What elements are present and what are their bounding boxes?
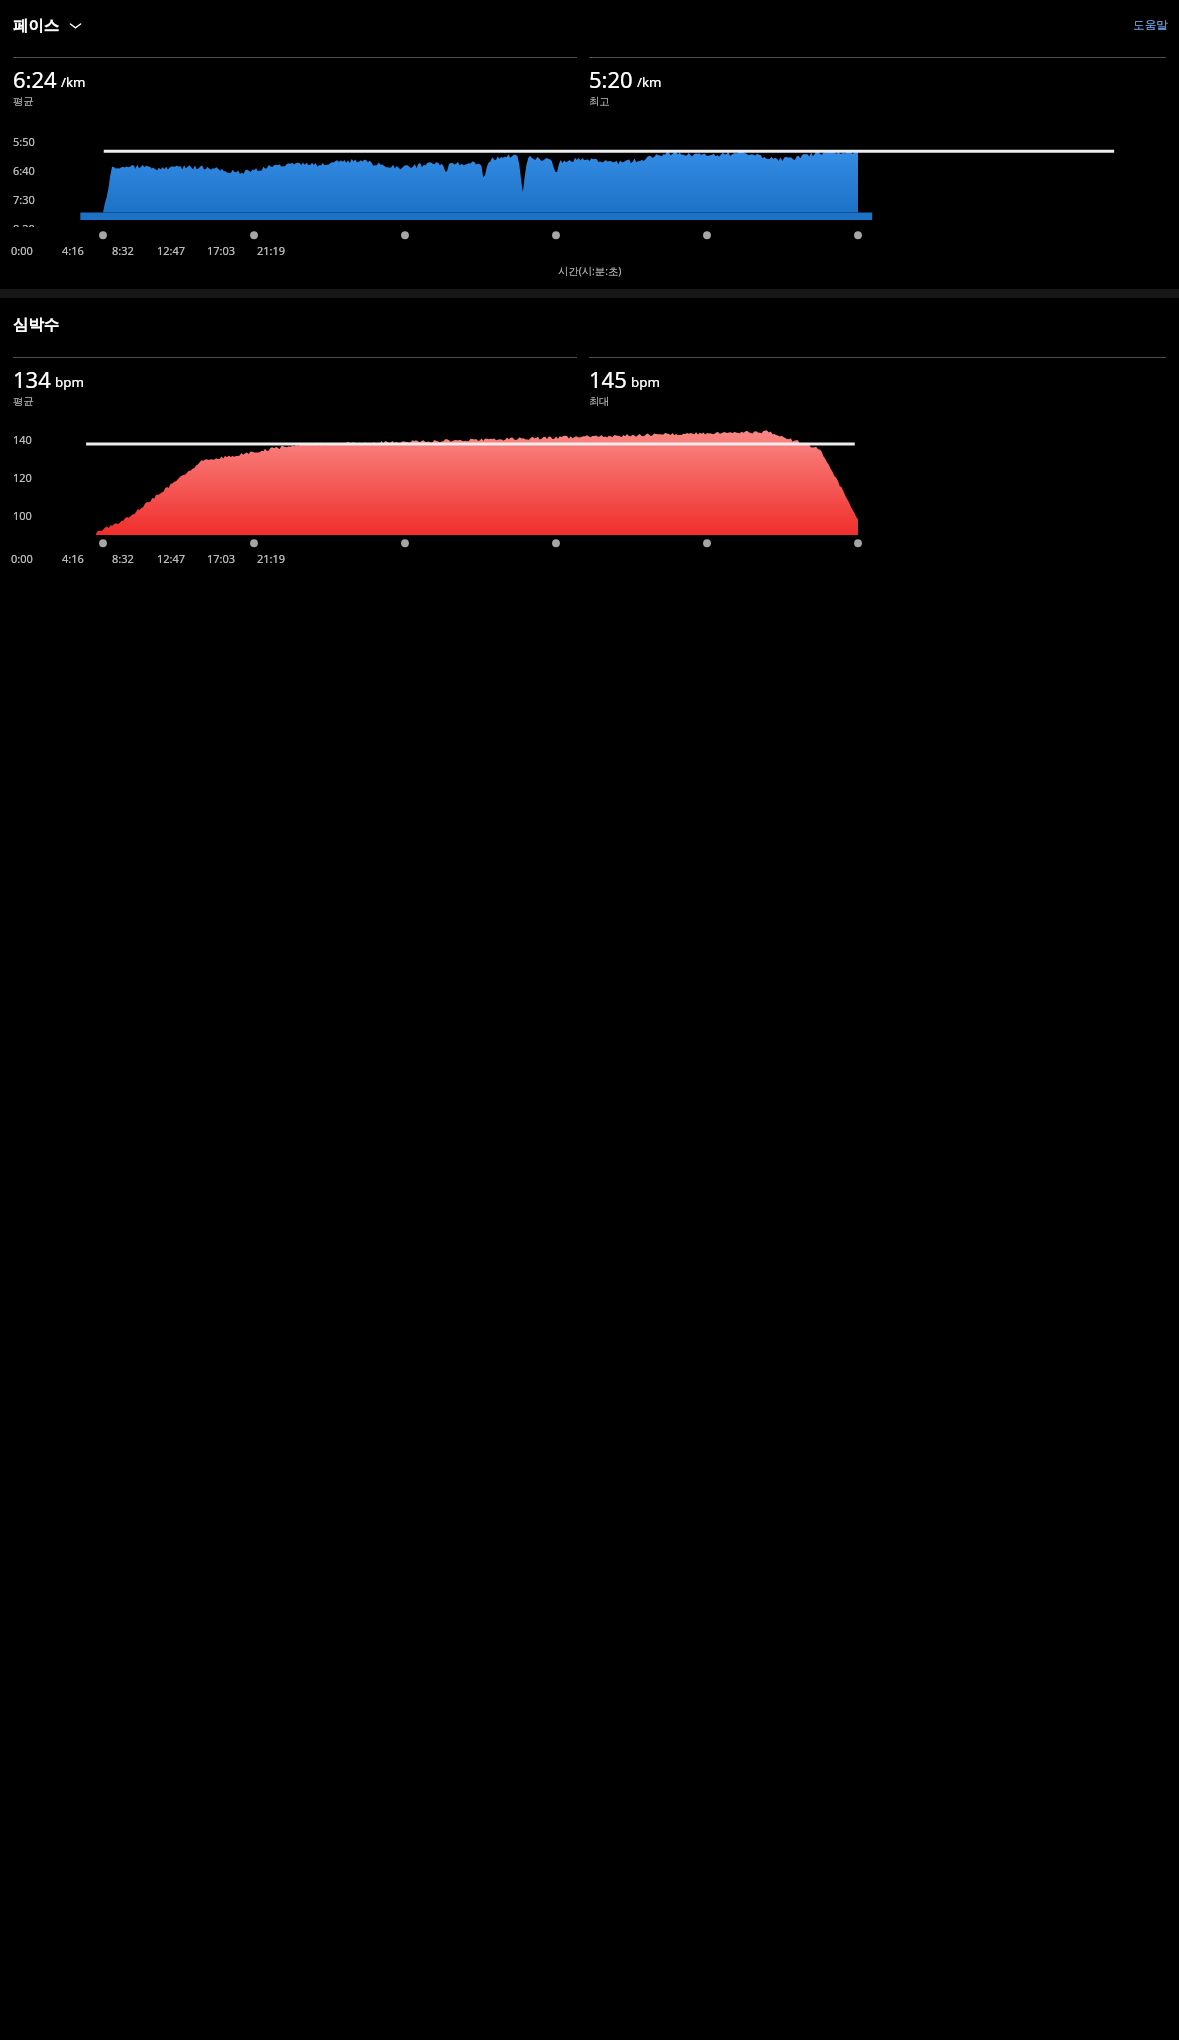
staticText: 6:24 — [13, 64, 57, 94]
staticText: 134 — [13, 364, 51, 394]
staticText: 145 — [589, 364, 627, 394]
button[interactable]: 페이스 — [10, 13, 86, 38]
staticText: 8:20 — [13, 221, 35, 227]
staticText: 도움말 — [1133, 18, 1168, 33]
button[interactable]: 도움말 — [1122, 13, 1179, 38]
staticText: 5:50 — [13, 134, 35, 149]
staticText: 21:19 — [257, 243, 286, 258]
staticText: 최고 — [589, 95, 610, 108]
staticText: 100 — [13, 508, 32, 523]
staticText: 12:47 — [157, 243, 186, 258]
staticText: 4:16 — [62, 243, 84, 258]
staticText: /km — [637, 73, 662, 91]
staticText: bpm — [55, 373, 84, 391]
staticText: 5:20 — [589, 64, 633, 94]
staticText: /km — [61, 73, 86, 91]
staticText: 최대 — [589, 395, 610, 408]
staticText: 시간(시:분:초) — [558, 264, 622, 278]
staticText: 17:03 — [207, 243, 236, 258]
staticText: 8:32 — [112, 243, 134, 258]
staticText: 7:30 — [13, 192, 35, 207]
staticText: 평균 — [13, 395, 34, 408]
other: Change metric — [68, 18, 83, 33]
staticText: 8:32 — [112, 551, 134, 566]
staticText: 140 — [13, 432, 32, 447]
staticText: 평균 — [13, 95, 34, 108]
staticText: 120 — [13, 470, 32, 485]
staticText: 0:00 — [11, 243, 33, 258]
staticText: 6:40 — [13, 163, 35, 178]
staticText: 0:00 — [11, 551, 33, 566]
staticText: 4:16 — [62, 551, 84, 566]
staticText: 21:19 — [257, 551, 286, 566]
staticText: 12:47 — [157, 551, 186, 566]
staticText: bpm — [631, 373, 660, 391]
staticText: 17:03 — [207, 551, 236, 566]
staticText: 심박수 — [13, 315, 59, 334]
staticText: 페이스 — [13, 16, 59, 35]
